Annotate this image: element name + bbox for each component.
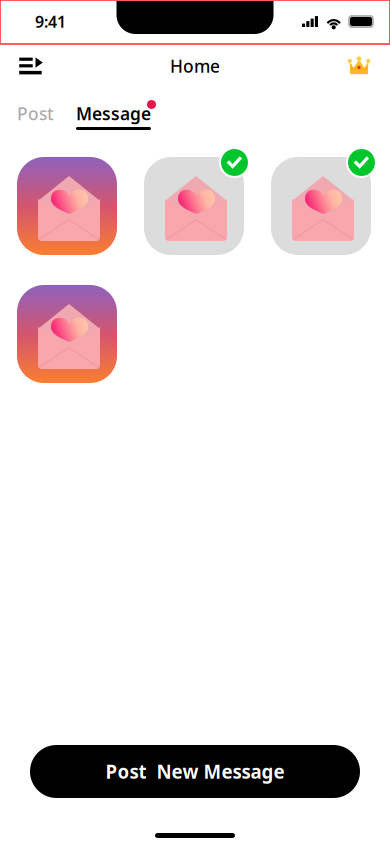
- staticText: 9:41: [35, 11, 66, 32]
- staticText: Post: [17, 102, 54, 125]
- button[interactable]: Message: [76, 104, 151, 130]
- button[interactable]: Message: [17, 157, 117, 255]
- button[interactable]: Premium: [336, 44, 382, 88]
- button[interactable]: Post: [17, 104, 54, 130]
- staticText: Message: [76, 102, 151, 125]
- button[interactable]: Message, selected: [144, 157, 244, 255]
- staticText: Post New Message: [105, 759, 284, 784]
- button[interactable]: Post New Message: [30, 745, 360, 798]
- staticText: Home: [170, 54, 220, 77]
- button[interactable]: Menu: [8, 44, 54, 88]
- button[interactable]: Message, selected: [271, 157, 371, 255]
- button[interactable]: Message: [17, 285, 117, 383]
